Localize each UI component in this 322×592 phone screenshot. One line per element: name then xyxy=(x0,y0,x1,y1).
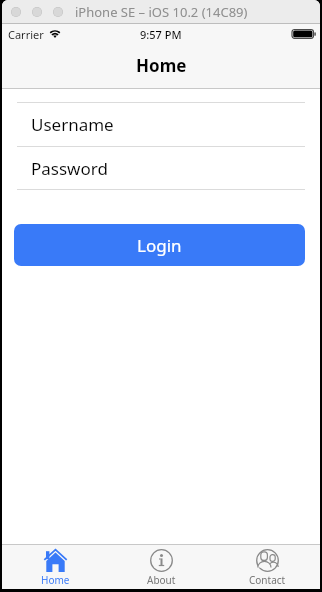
button[interactable]: About xyxy=(108,545,214,589)
staticText: About xyxy=(147,573,176,587)
button[interactable]: Contact xyxy=(214,545,320,589)
staticText: 9:57 PM xyxy=(140,27,182,42)
staticText: Username xyxy=(31,113,114,136)
staticText: Password xyxy=(31,157,108,180)
button[interactable]: Password xyxy=(2,147,320,189)
button[interactable]: Username xyxy=(2,103,320,146)
staticText: iPhone SE – iOS 10.2 (14C89) xyxy=(75,3,248,21)
staticText: Home xyxy=(41,573,70,587)
button[interactable]: Login xyxy=(14,224,305,266)
staticText: Contact xyxy=(249,573,286,587)
staticText: Carrier xyxy=(8,27,44,42)
staticText: Home xyxy=(136,54,187,77)
button[interactable]: Home xyxy=(2,545,108,589)
staticText: Login xyxy=(137,234,182,257)
